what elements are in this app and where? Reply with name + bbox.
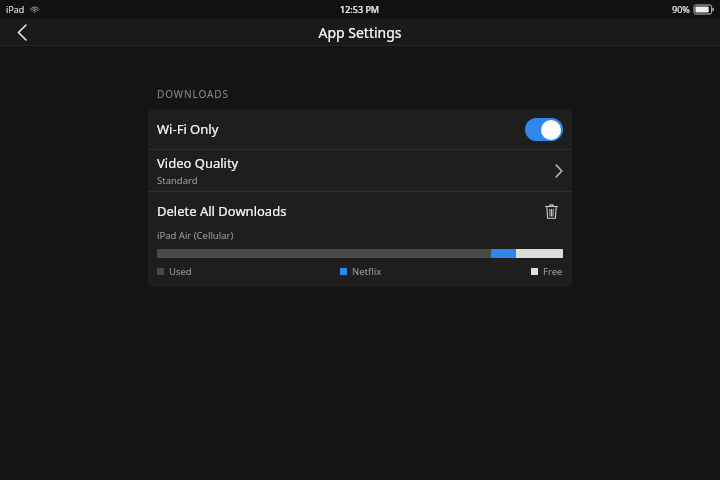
button[interactable]: Wi-Fi Only toggle, on	[525, 118, 563, 141]
staticText: DOWNLOADS	[157, 87, 229, 101]
staticText: iPad	[6, 3, 25, 15]
button[interactable]: Delete all downloads	[539, 199, 563, 223]
button[interactable]: Delete All Downloads	[148, 192, 572, 229]
staticText: App Settings	[318, 23, 402, 42]
staticText: Netflix	[352, 265, 382, 278]
staticText: 90%	[672, 3, 690, 15]
button[interactable]: Back	[0, 18, 44, 46]
button[interactable]: Wi-Fi Only	[148, 109, 572, 149]
staticText: 12:53 PM	[340, 3, 380, 15]
staticText: Delete All Downloads	[157, 202, 287, 220]
staticText: Used	[169, 265, 192, 278]
button[interactable]: Video Quality	[148, 150, 572, 191]
staticText: Free	[543, 265, 563, 278]
staticText: Wi-Fi Only	[157, 120, 219, 138]
staticText: Video Quality	[157, 154, 239, 172]
staticText: iPad Air (Cellular)	[157, 229, 234, 242]
staticText: Standard	[157, 174, 198, 187]
